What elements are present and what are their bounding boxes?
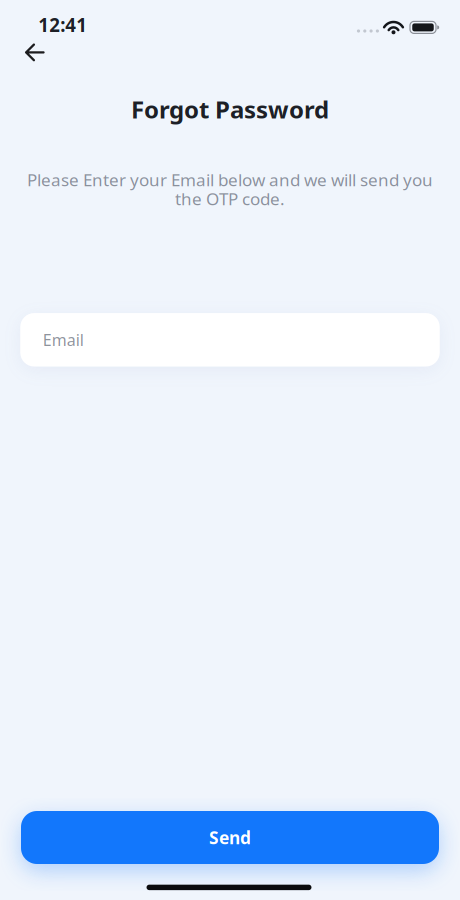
staticText: Send	[209, 826, 251, 849]
staticText: Email	[43, 329, 84, 350]
button[interactable]: Email	[20, 313, 440, 367]
button[interactable]: Back	[17, 36, 53, 70]
button[interactable]: Send	[21, 811, 439, 864]
staticText: 12:41	[38, 12, 87, 37]
staticText: Forgot Password	[131, 93, 329, 125]
staticText: Please Enter your Email below and we wil…	[27, 168, 433, 191]
staticText: the OTP code.	[175, 187, 285, 210]
